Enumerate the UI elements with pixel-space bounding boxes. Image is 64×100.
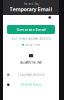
- staticText: Refresh Inbox: [21, 83, 41, 86]
- button[interactable]: Settings: [48, 16, 51, 19]
- staticText: Temporary Email: [9, 6, 52, 13]
- staticText: aqua@demo.mail: [20, 61, 42, 64]
- staticText: Generate Email: [16, 27, 45, 32]
- staticText: Fast and Easy: [23, 2, 38, 6]
- staticText: Copy Email Address: [18, 73, 44, 76]
- staticText: Your Temporary Email Address: [11, 37, 50, 40]
- button[interactable]: Copy Email Address: [3, 70, 59, 79]
- button[interactable]: Refresh Inbox: [3, 80, 59, 89]
- staticText: Active now: [25, 43, 40, 46]
- button[interactable]: Generate Email: [7, 25, 55, 34]
